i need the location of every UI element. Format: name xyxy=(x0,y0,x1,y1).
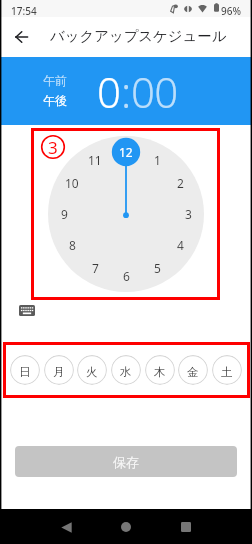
staticText: 2 xyxy=(177,175,184,191)
button[interactable]: 11 xyxy=(82,150,108,170)
button[interactable]: 土 xyxy=(212,355,242,385)
staticText: 12 xyxy=(119,144,133,160)
button[interactable]: 1 xyxy=(144,150,170,170)
staticText: 96% xyxy=(221,4,241,18)
staticText: 17:54 xyxy=(11,4,37,18)
button[interactable]: 7 xyxy=(82,258,108,278)
staticText: 10 xyxy=(65,175,79,191)
staticText: 11 xyxy=(88,152,102,168)
button[interactable]: Back xyxy=(50,511,82,543)
staticText: 9 xyxy=(61,206,68,222)
button[interactable]: 9 xyxy=(51,204,77,224)
button[interactable]: 水 xyxy=(111,355,141,385)
button[interactable]: 金 xyxy=(178,355,208,385)
button[interactable]: 3 xyxy=(175,204,201,224)
staticText: 午後 xyxy=(43,93,67,108)
staticText: 4 xyxy=(177,237,184,253)
button[interactable]: 6 xyxy=(113,266,139,286)
staticText: 保存 xyxy=(113,454,139,470)
button[interactable]: 午前 xyxy=(43,73,67,88)
staticText: 木 xyxy=(154,365,166,379)
button[interactable]: 4 xyxy=(167,235,193,255)
staticText: 日 xyxy=(19,365,31,379)
button[interactable]: 10 xyxy=(59,173,85,193)
button[interactable]: 00 xyxy=(131,63,178,120)
staticText: 水 xyxy=(120,365,132,379)
button[interactable]: 5 xyxy=(144,258,170,278)
staticText: 月 xyxy=(53,365,65,379)
button[interactable]: 0 xyxy=(97,63,121,120)
button[interactable]: Switch to keyboard input xyxy=(12,300,41,320)
button[interactable]: 12 xyxy=(113,142,139,162)
button[interactable]: 8 xyxy=(59,235,85,255)
staticText: 3 xyxy=(185,206,192,222)
button[interactable]: 日 xyxy=(10,355,40,385)
staticText: 土 xyxy=(221,365,233,379)
staticText: 午前 xyxy=(43,73,67,88)
button[interactable]: Home xyxy=(110,511,142,543)
staticText: 5 xyxy=(154,260,161,276)
button[interactable]: 保存 xyxy=(15,446,237,477)
staticText: 火 xyxy=(86,365,98,379)
staticText: 8 xyxy=(69,237,76,253)
button[interactable]: Back xyxy=(8,24,34,50)
staticText: 7 xyxy=(92,260,99,276)
button[interactable]: 月 xyxy=(44,355,74,385)
button[interactable]: 火 xyxy=(77,355,107,385)
button[interactable]: 2 xyxy=(167,173,193,193)
staticText: 3 xyxy=(48,136,58,159)
staticText: バックアップスケジュール xyxy=(50,27,227,45)
button[interactable]: 木 xyxy=(145,355,175,385)
button[interactable]: 午後 xyxy=(43,93,67,108)
button[interactable]: Recent apps xyxy=(170,511,202,543)
staticText: : xyxy=(121,63,131,120)
staticText: 1 xyxy=(154,152,161,168)
staticText: 6 xyxy=(123,268,130,284)
staticText: 金 xyxy=(187,365,199,379)
